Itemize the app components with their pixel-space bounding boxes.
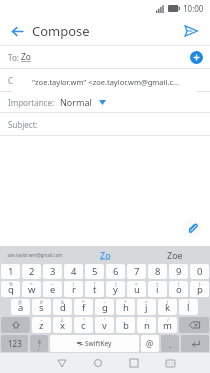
staticText: x bbox=[60, 319, 66, 332]
staticText: < bbox=[135, 281, 138, 287]
button[interactable]: ( bbox=[158, 299, 177, 315]
button[interactable]: Zo bbox=[70, 246, 140, 263]
button[interactable]: ~ bbox=[43, 281, 62, 297]
button[interactable]: 3 bbox=[43, 264, 62, 279]
staticText: e bbox=[50, 283, 56, 296]
button[interactable]: @ bbox=[11, 299, 30, 315]
button[interactable]: ° bbox=[74, 317, 93, 333]
button[interactable]: Attach bbox=[182, 218, 202, 238]
staticText: g bbox=[102, 301, 108, 314]
button[interactable]: 0 bbox=[190, 264, 209, 279]
button[interactable]: Recents bbox=[116, 353, 152, 373]
button[interactable]: 6 bbox=[106, 264, 125, 279]
staticText: % bbox=[9, 281, 13, 287]
button[interactable]: # bbox=[32, 299, 51, 315]
button[interactable]: ' bbox=[95, 317, 114, 333]
button[interactable]: / bbox=[158, 317, 177, 333]
button[interactable]: ; bbox=[137, 317, 156, 333]
button[interactable]: ^ bbox=[22, 281, 41, 297]
staticText: . bbox=[169, 338, 172, 350]
staticText: ) bbox=[188, 299, 190, 305]
staticText: 10:00 bbox=[183, 3, 204, 14]
staticText: ~ bbox=[51, 281, 54, 287]
button[interactable]: ) bbox=[179, 299, 198, 315]
staticText: # bbox=[40, 299, 43, 305]
staticText: c bbox=[81, 319, 86, 332]
button[interactable]: Backspace bbox=[179, 317, 209, 333]
button[interactable]: Home bbox=[80, 353, 116, 373]
staticText: SwiftKey bbox=[85, 339, 112, 348]
button[interactable]: Voice input bbox=[30, 335, 48, 352]
button[interactable]: & bbox=[53, 299, 72, 315]
staticText: ) bbox=[199, 281, 201, 287]
staticText: + bbox=[124, 299, 127, 305]
button[interactable]: 8 bbox=[148, 264, 167, 279]
button[interactable]: Send bbox=[179, 19, 203, 43]
button[interactable]: @ bbox=[141, 335, 159, 352]
button[interactable]: 9 bbox=[169, 264, 188, 279]
button[interactable]: Back bbox=[44, 353, 80, 373]
button[interactable]: ) bbox=[190, 281, 209, 297]
staticText: ^ bbox=[30, 281, 33, 287]
button[interactable]: 1 bbox=[1, 264, 20, 279]
button[interactable]: = bbox=[137, 299, 156, 315]
staticText: * bbox=[82, 299, 85, 305]
button[interactable]: To: bbox=[8, 46, 202, 68]
button[interactable]: Hide keyboard bbox=[152, 353, 188, 373]
button[interactable]: 7 bbox=[127, 264, 146, 279]
button[interactable]: £ bbox=[53, 317, 72, 333]
button[interactable]: ~ bbox=[32, 317, 51, 333]
staticText: i bbox=[156, 283, 159, 296]
staticText: ° bbox=[83, 317, 85, 323]
staticText: Compose bbox=[32, 22, 90, 40]
button[interactable]: Back bbox=[6, 20, 28, 42]
button[interactable]: % bbox=[1, 281, 20, 297]
button[interactable]: ( bbox=[169, 281, 188, 297]
button[interactable]: Subject: bbox=[0, 113, 210, 135]
staticText: ; bbox=[146, 317, 148, 323]
button[interactable]: + bbox=[116, 299, 135, 315]
button[interactable]: Zoe bbox=[140, 246, 210, 263]
staticText: u bbox=[134, 283, 140, 296]
button[interactable]: Enter bbox=[181, 335, 209, 352]
button[interactable]: Importance: bbox=[8, 92, 210, 112]
button[interactable]: ] bbox=[106, 281, 125, 297]
staticText: To: bbox=[8, 52, 21, 63]
button[interactable]: [ bbox=[85, 281, 104, 297]
staticText: 8 bbox=[155, 265, 161, 278]
button[interactable]: . bbox=[161, 335, 179, 352]
button[interactable]: 5 bbox=[85, 264, 104, 279]
button[interactable]: 4 bbox=[64, 264, 83, 279]
staticText: ( bbox=[167, 299, 169, 305]
staticText: > bbox=[156, 281, 159, 287]
button[interactable]: < bbox=[127, 281, 146, 297]
staticText: ' bbox=[104, 317, 106, 323]
staticText: Importance: bbox=[8, 97, 55, 108]
staticText: @ bbox=[18, 299, 23, 305]
staticText: 1 bbox=[8, 265, 14, 278]
staticText: 6 bbox=[113, 265, 119, 278]
staticText: / bbox=[167, 317, 169, 323]
button[interactable]: Shift bbox=[1, 317, 30, 333]
staticText: 7 bbox=[134, 265, 140, 278]
staticText: £ bbox=[61, 317, 64, 323]
button[interactable]: - bbox=[95, 299, 114, 315]
staticText: 3 bbox=[50, 265, 56, 278]
button[interactable]: Space bbox=[50, 335, 139, 352]
staticText: 2 bbox=[29, 265, 35, 278]
staticText: y bbox=[113, 283, 118, 296]
button[interactable]: * bbox=[74, 299, 93, 315]
button[interactable]: 123 bbox=[1, 335, 28, 352]
button[interactable]: | bbox=[64, 281, 83, 297]
staticText: @ bbox=[146, 338, 154, 349]
button[interactable]: zoe.taylor.wm@gmail.com bbox=[0, 246, 70, 263]
button[interactable]: "zoe.taylor.wm" <zoe.taylor.wm@gmail.c… bbox=[13, 69, 197, 95]
button[interactable]: 2 bbox=[22, 264, 41, 279]
staticText: z bbox=[39, 319, 44, 332]
button[interactable]: Add contact bbox=[190, 51, 203, 64]
button[interactable]: : bbox=[116, 317, 135, 333]
button[interactable]: > bbox=[148, 281, 167, 297]
staticText: b bbox=[123, 319, 129, 332]
staticText: o bbox=[176, 283, 182, 296]
staticText: Zo bbox=[21, 51, 32, 63]
